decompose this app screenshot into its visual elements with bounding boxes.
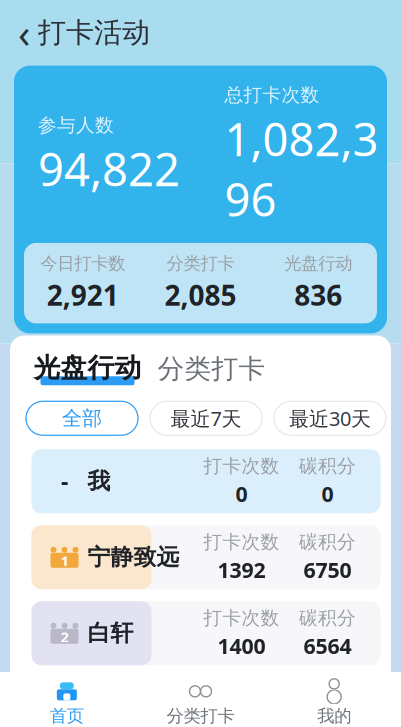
staticText: 打卡次数 [203,683,279,705]
staticText: 2,921 [47,276,119,313]
button[interactable]: 分类打卡 [157,352,265,385]
staticText: 分类打卡 [166,253,234,274]
button[interactable]: 我的 [267,680,401,727]
staticText: 打卡活动 [38,15,150,50]
staticText: 总打卡次数 [224,84,319,106]
staticText: 宁静致远 [87,543,179,571]
staticText: 1392 [217,556,265,584]
staticText: 0 [235,480,247,508]
staticText: 参与人数 [38,114,114,137]
staticText: 我的 [317,705,351,727]
staticText: 碳积分 [299,683,356,705]
button[interactable]: - [31,449,380,513]
staticText: 0 [321,480,333,508]
staticText: 首页 [50,705,84,727]
staticText: 1400 [217,632,265,660]
staticText: 6564 [303,632,351,660]
staticText: 分类打卡 [157,352,265,385]
staticText: 光盘行动 [33,351,141,384]
staticText: 3 [60,703,68,722]
button[interactable]: 1 [31,525,380,589]
staticText: 碳积分 [299,607,356,629]
staticText: 1,082,396 [224,108,378,229]
staticText: 碳积分 [299,531,356,553]
button[interactable]: 最近30天 [274,401,386,435]
staticText: - [61,466,68,496]
staticText: 最近7天 [170,405,241,432]
staticText: 分类打卡 [166,705,234,727]
button[interactable]: 2 [31,601,380,665]
button[interactable]: 全部 [26,401,138,435]
button[interactable]: ‹ [18,6,150,59]
staticText: 我 [87,467,110,495]
button[interactable]: 分类打卡 [134,680,267,727]
staticText: 打卡次数 [203,455,279,477]
staticText: 打卡次数 [203,607,279,629]
staticText: ‹ [18,6,30,59]
staticText: 94,822 [38,139,180,199]
staticText: 6750 [303,556,351,584]
staticText: 光盘行动 [284,253,352,274]
staticText: 2,085 [164,276,236,313]
button[interactable]: 3 [31,677,380,727]
staticText: 碳积分 [299,455,356,477]
button[interactable]: 首页 [0,680,134,727]
staticText: 1 [60,551,68,570]
button[interactable]: 光盘行动 [33,351,141,385]
staticText: 打卡次数 [203,531,279,553]
staticText: 最近30天 [289,405,371,432]
staticText: 全部 [62,406,102,431]
button[interactable]: 最近7天 [150,401,262,435]
staticText: 2 [60,627,68,646]
staticText: 836 [294,276,342,313]
staticText: 今日打卡数 [40,253,125,274]
staticText: 白轩 [87,619,133,647]
